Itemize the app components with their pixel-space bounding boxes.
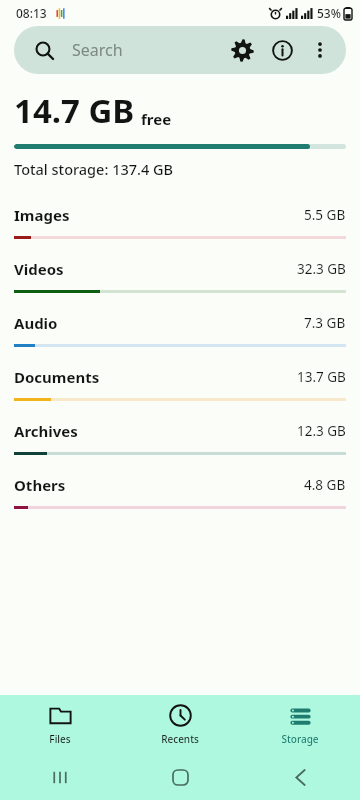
staticText: Archives (14, 421, 78, 441)
staticText: free (141, 109, 172, 129)
button[interactable]: Recent apps (0, 755, 120, 800)
staticText: Documents (14, 367, 100, 387)
staticText: Storage (281, 732, 319, 746)
button[interactable]: Storage (240, 698, 360, 752)
button[interactable]: Videos (0, 249, 360, 303)
staticText: 53% (317, 5, 341, 21)
button[interactable]: Archives (0, 411, 360, 465)
button[interactable]: Search (60, 39, 222, 61)
button[interactable]: Audio (0, 303, 360, 357)
staticText: 13.7 GB (297, 368, 346, 386)
staticText: 5.5 GB (304, 206, 346, 224)
staticText: 12.3 GB (297, 422, 346, 440)
staticText: Audio (14, 313, 58, 333)
staticText: Videos (14, 259, 64, 279)
staticText: Recents (161, 732, 199, 746)
button[interactable]: Home (120, 755, 240, 800)
button[interactable]: Settings (222, 30, 262, 70)
staticText: Total storage: 137.4 GB (14, 159, 174, 179)
staticText: 4.8 GB (304, 476, 346, 494)
staticText: 08:13 (16, 5, 47, 21)
staticText: Others (14, 475, 66, 495)
staticText: Files (49, 732, 71, 746)
button[interactable]: Information (262, 30, 302, 70)
button[interactable]: Documents (0, 357, 360, 411)
staticText: 14.7 GB (14, 88, 135, 133)
staticText: 7.3 GB (304, 314, 346, 332)
staticText: Images (14, 205, 70, 225)
button[interactable]: Recents (120, 698, 240, 752)
button[interactable]: Images (0, 195, 360, 249)
button[interactable]: Others (0, 465, 360, 519)
button[interactable]: Files (0, 698, 120, 752)
staticText: 32.3 GB (297, 260, 346, 278)
button[interactable]: Search (28, 34, 60, 66)
staticText: Search (72, 39, 123, 61)
button[interactable]: More options (302, 32, 338, 68)
button[interactable]: Back (240, 755, 360, 800)
